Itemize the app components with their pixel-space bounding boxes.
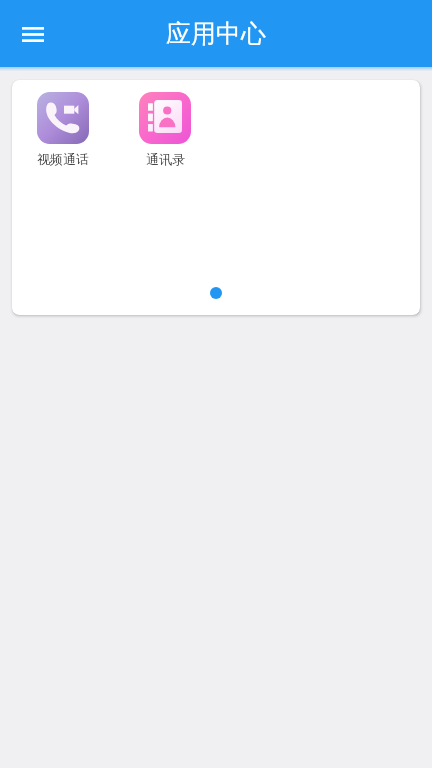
staticText: 应用中心 [166,18,266,49]
button[interactable]: Open navigation menu [10,8,56,60]
button[interactable]: 通讯录 [114,92,216,167]
button[interactable]: Page 1 of 1 [210,287,222,299]
staticText: 视频通话 [37,151,89,167]
button[interactable]: 视频通话 [12,92,114,167]
staticText: 通讯录 [146,151,185,167]
